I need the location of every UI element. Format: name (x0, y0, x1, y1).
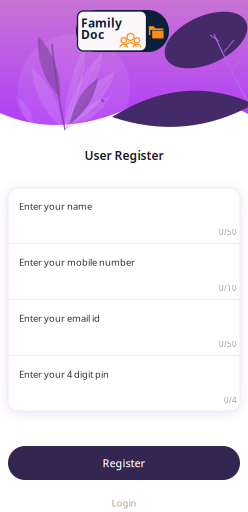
staticText: Enter your 4 digit pin (19, 368, 109, 380)
button[interactable]: Login (0, 492, 248, 512)
staticText: Enter your email id (19, 312, 100, 324)
staticText: 0/50 (219, 226, 237, 237)
staticText: Enter your mobile number (19, 256, 135, 268)
staticText: Doc (81, 26, 104, 42)
staticText: User Register (84, 147, 163, 163)
staticText: Register (102, 456, 145, 470)
button[interactable]: Enter your mobile number (8, 244, 240, 299)
staticText: Enter your name (19, 200, 92, 212)
button[interactable]: Register (8, 446, 240, 480)
button[interactable]: Enter your 4 digit pin (8, 356, 240, 411)
staticText: Login (111, 497, 136, 509)
staticText: 0/50 (219, 338, 237, 349)
button[interactable]: Enter your email id (8, 300, 240, 355)
staticText: 0/4 (224, 394, 237, 405)
staticText: 0/10 (219, 282, 237, 293)
button[interactable]: Enter your name (8, 188, 240, 243)
staticText: Family (81, 15, 122, 31)
